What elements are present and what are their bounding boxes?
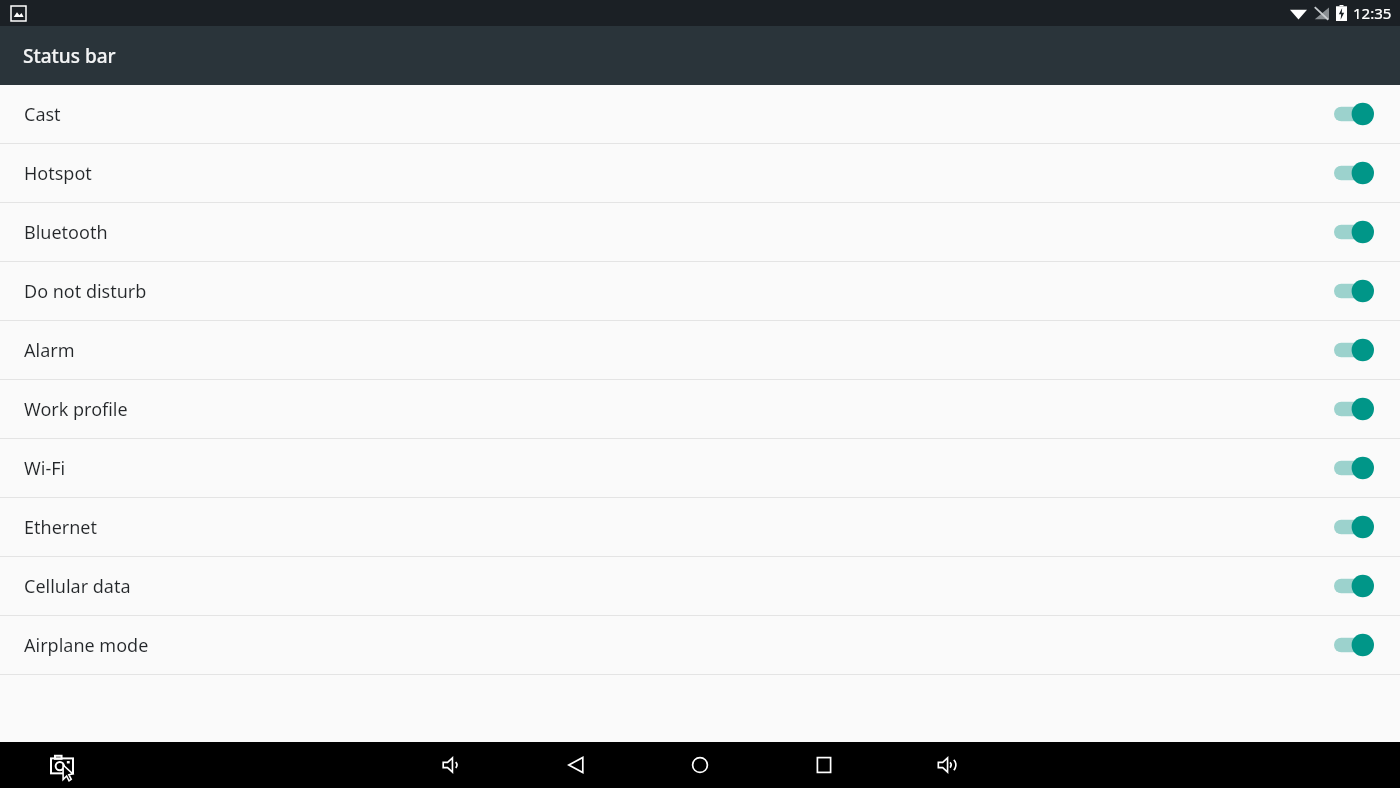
button[interactable]: Toggle	[1334, 278, 1374, 304]
staticText: Cellular data	[24, 574, 1334, 599]
staticText: Do not disturb	[24, 279, 1334, 304]
button[interactable]: Toggle	[1334, 632, 1374, 658]
button[interactable]: Toggle	[1334, 101, 1374, 127]
button[interactable]: Screenshot	[45, 748, 79, 782]
staticText: Hotspot	[24, 161, 1334, 186]
button[interactable]: Volume up	[930, 747, 966, 783]
staticText: Status bar	[23, 43, 116, 69]
button[interactable]: Toggle	[1334, 573, 1374, 599]
button[interactable]: Airplane mode	[0, 616, 1400, 674]
staticText: Airplane mode	[24, 633, 1334, 658]
button[interactable]: Recents	[806, 747, 842, 783]
button[interactable]: Toggle	[1334, 514, 1374, 540]
staticText: Work profile	[24, 397, 1334, 422]
button[interactable]: Bluetooth	[0, 203, 1400, 261]
button[interactable]: Back	[558, 747, 594, 783]
staticText: Wi-Fi	[24, 456, 1334, 481]
staticText: Bluetooth	[24, 220, 1334, 245]
button[interactable]: Toggle	[1334, 396, 1374, 422]
button[interactable]: Toggle	[1334, 219, 1374, 245]
button[interactable]: Toggle	[1334, 160, 1374, 186]
staticText: Cast	[24, 102, 1334, 127]
button[interactable]: Alarm	[0, 321, 1400, 379]
staticText: 12:35	[1353, 3, 1392, 23]
staticText: Alarm	[24, 338, 1334, 363]
button[interactable]: Wi-Fi	[0, 439, 1400, 497]
button[interactable]: Work profile	[0, 380, 1400, 438]
button[interactable]: Home	[682, 747, 718, 783]
button[interactable]: Toggle	[1334, 337, 1374, 363]
button[interactable]: Ethernet	[0, 498, 1400, 556]
button[interactable]: Volume down	[434, 747, 470, 783]
button[interactable]: Do not disturb	[0, 262, 1400, 320]
button[interactable]: Toggle	[1334, 455, 1374, 481]
button[interactable]: Cast	[0, 85, 1400, 143]
button[interactable]: Hotspot	[0, 144, 1400, 202]
button[interactable]: Cellular data	[0, 557, 1400, 615]
staticText: Ethernet	[24, 515, 1334, 540]
